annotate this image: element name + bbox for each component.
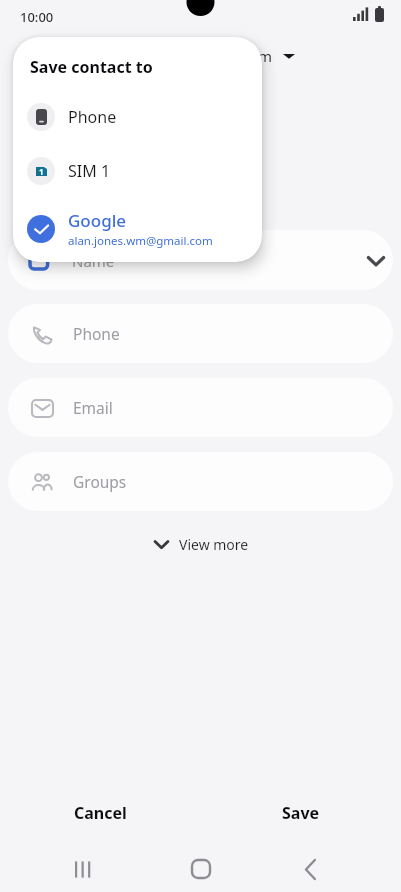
button[interactable]: Cancel <box>0 790 200 835</box>
staticText: Save <box>282 802 320 824</box>
staticText: 10:00 <box>20 8 54 26</box>
staticText: Google <box>68 209 127 232</box>
staticText: View more <box>179 535 249 554</box>
staticText: SIM 1 <box>68 160 111 182</box>
button[interactable]: View more <box>0 531 401 557</box>
staticText: Phone <box>68 106 117 128</box>
button[interactable]: Name <box>8 230 393 290</box>
staticText: Phone <box>73 323 120 344</box>
button[interactable]: Phone <box>8 304 393 363</box>
button[interactable]: Groups <box>8 452 393 511</box>
button[interactable]: Save <box>200 790 401 835</box>
button[interactable]: Phone <box>13 93 262 141</box>
button[interactable]: 1 <box>13 147 262 195</box>
staticText: 1 <box>39 166 44 177</box>
staticText: Email <box>73 397 113 418</box>
staticText: Name <box>72 251 115 271</box>
button[interactable]: Google <box>13 201 262 257</box>
staticText: Cancel <box>74 802 127 824</box>
staticText: alan.jones.wm@gmail.com <box>68 233 213 249</box>
staticText: Save contact to <box>30 56 153 78</box>
staticText: m <box>258 46 273 66</box>
other: Expand name <box>364 254 388 268</box>
button[interactable]: Email <box>8 378 393 437</box>
staticText: Groups <box>73 471 127 492</box>
button[interactable]: Recent apps <box>62 846 102 892</box>
button[interactable]: Home <box>178 846 224 892</box>
button[interactable]: Back <box>291 846 331 892</box>
